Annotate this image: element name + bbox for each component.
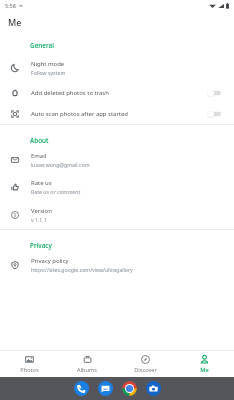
staticText: Me [8,16,22,28]
staticText: Auto scan photos after app started [31,110,128,118]
staticText: Follow system [31,69,66,76]
button[interactable]: Me [175,351,234,377]
staticText: Discover [134,366,157,374]
staticText: v 1.1.1 [31,216,47,223]
button[interactable]: Discover [116,351,175,377]
staticText: 5:58 [5,2,16,9]
staticText: General [30,41,54,50]
button[interactable]: Version [0,203,234,227]
staticText: Privacy [30,241,52,250]
button[interactable]: Night mode [0,56,234,80]
button[interactable]: Phone [74,381,89,396]
staticText: Email [31,152,47,160]
button[interactable]: Rate us [0,175,234,199]
staticText: Photos [20,366,39,374]
button[interactable]: Chrome [122,381,137,396]
staticText: Rate us [31,179,52,187]
staticText: Albums [77,366,97,374]
button[interactable]: Photos [0,351,58,377]
staticText: Rate us or comment [31,188,81,195]
staticText: Add deleted photos to trash [31,89,109,97]
staticText: Version [31,207,52,215]
staticText: Night mode [31,60,65,68]
button[interactable]: Auto scan photos after app started [0,103,234,124]
button[interactable]: Messages [98,381,113,396]
button[interactable]: Camera [146,381,161,396]
staticText: https://sites.google.com/view/ultragalle… [31,266,133,273]
button[interactable]: Privacy policy [0,253,234,277]
button[interactable]: Email [0,148,234,172]
staticText: kuoer.wong@gmail.com [31,161,90,168]
button[interactable]: Me [0,12,234,32]
button[interactable]: Albums [58,351,116,377]
staticText: Me [200,366,209,374]
button[interactable]: Add deleted photos to trash [0,82,234,103]
staticText: Privacy policy [31,257,69,265]
staticText: About [30,136,49,145]
